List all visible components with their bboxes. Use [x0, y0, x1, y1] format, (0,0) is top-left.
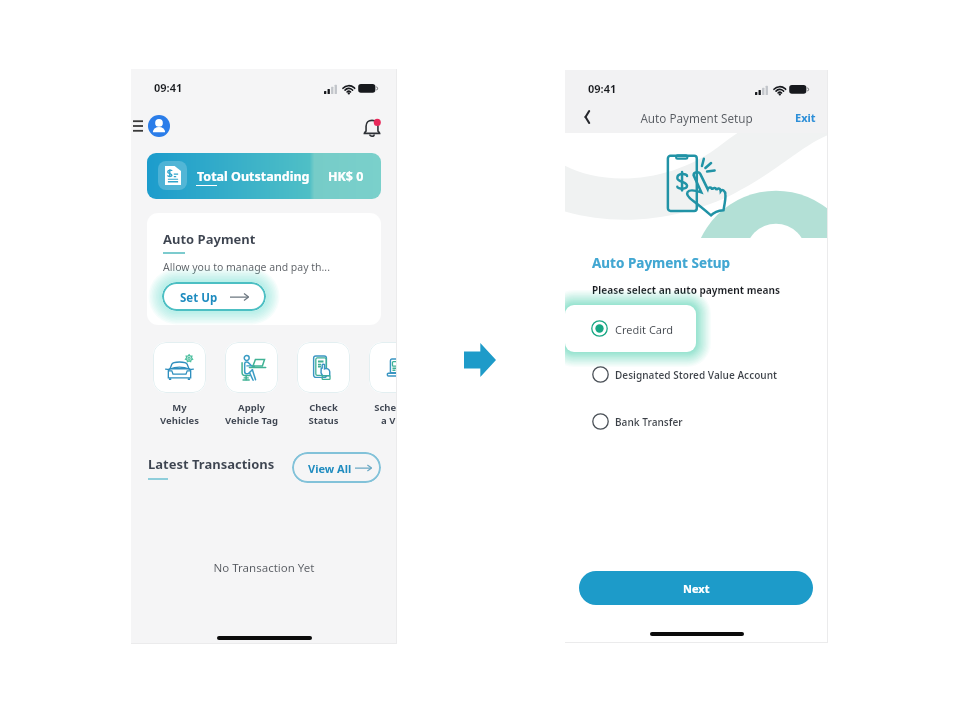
- staticText: Vehicle Tag: [225, 414, 278, 427]
- staticText: Auto Payment Setup: [592, 254, 731, 272]
- staticText: Check: [309, 401, 338, 414]
- staticText: Auto Payment: [163, 230, 256, 248]
- staticText: Exit: [795, 110, 816, 125]
- staticText: Designated Stored Value Account: [615, 368, 778, 382]
- button[interactable]: Designated Stored Value Account: [565, 364, 828, 385]
- button[interactable]: Credit Card: [565, 305, 696, 352]
- staticText: Set Up: [180, 290, 218, 306]
- staticText: Vehicles: [160, 414, 199, 427]
- button[interactable]: Exit: [795, 110, 816, 125]
- staticText: a Visit: [381, 414, 397, 427]
- staticText: HK$ 0: [328, 168, 364, 185]
- staticText: My: [172, 401, 187, 414]
- button[interactable]: Bank Transfer: [565, 411, 828, 432]
- button[interactable]: Menu: [131, 115, 145, 137]
- staticText: Status: [308, 414, 339, 427]
- button[interactable]: Schedule: [355, 342, 397, 427]
- button[interactable]: My: [139, 342, 220, 427]
- button[interactable]: Notifications: [361, 116, 383, 138]
- button[interactable]: Apply: [211, 342, 292, 427]
- staticText: 09:41: [154, 80, 183, 95]
- button[interactable]: Total Outstanding: [147, 153, 381, 199]
- staticText: Next: [683, 581, 710, 596]
- staticText: 09:41: [588, 81, 617, 96]
- staticText: Bank Transfer: [615, 415, 683, 429]
- button[interactable]: Auto Payment: [147, 213, 381, 325]
- staticText: Apply: [238, 401, 265, 414]
- button[interactable]: Profile: [148, 115, 170, 137]
- staticText: Schedule: [374, 401, 397, 414]
- staticText: Auto Payment Setup: [565, 110, 828, 126]
- button[interactable]: View All: [292, 452, 381, 483]
- staticText: Credit Card: [615, 322, 674, 337]
- button[interactable]: Check: [283, 342, 364, 427]
- staticText: Allow you to manage and pay th...: [163, 260, 330, 274]
- button[interactable]: Next: [579, 571, 813, 605]
- button[interactable]: Set Up: [162, 282, 266, 311]
- staticText: View All: [308, 461, 352, 476]
- staticText: Please select an auto payment means: [592, 283, 780, 297]
- button[interactable]: Back: [576, 106, 598, 128]
- staticText: Total Outstanding: [197, 168, 310, 185]
- staticText: No Transaction Yet: [131, 560, 397, 576]
- staticText: Latest Transactions: [148, 455, 275, 473]
